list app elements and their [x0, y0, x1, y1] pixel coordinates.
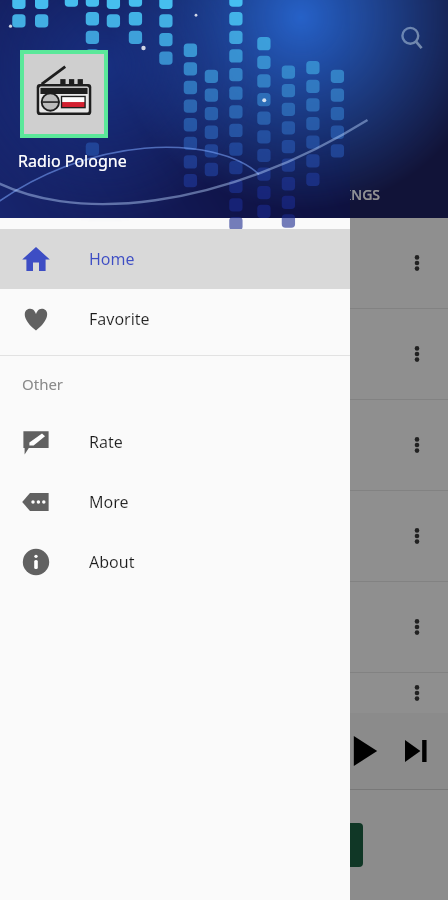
button[interactable]: STATIONS — [0, 170, 224, 218]
button[interactable]: Rate — [0, 412, 350, 472]
staticText: Radio Pologne — [18, 150, 127, 172]
button[interactable]: More options — [394, 240, 440, 286]
button[interactable]: More options — [0, 491, 448, 581]
staticText: More — [89, 491, 129, 513]
button[interactable]: More options — [0, 582, 448, 672]
button[interactable]: More — [0, 472, 350, 532]
staticText: Home — [89, 248, 135, 270]
button[interactable]: More options — [394, 673, 440, 713]
staticText: RECORDINGS — [291, 185, 381, 204]
button[interactable]: More options — [394, 604, 440, 650]
button[interactable]: More options — [0, 673, 448, 713]
button[interactable]: More options — [394, 422, 440, 468]
button[interactable]: About — [0, 532, 350, 592]
button[interactable]: More options — [394, 331, 440, 377]
button[interactable]: Favorite — [0, 289, 350, 349]
button[interactable]: More options — [0, 218, 448, 308]
button[interactable]: More options — [0, 309, 448, 399]
staticText: Favorite — [89, 308, 150, 330]
button[interactable]: RECORDINGS — [224, 170, 448, 218]
staticText: Other — [22, 374, 64, 394]
button[interactable]: Home — [0, 229, 350, 289]
staticText: About — [89, 551, 135, 573]
button[interactable]: Search — [392, 18, 432, 58]
button[interactable]: Play — [338, 725, 390, 777]
button[interactable]: Next — [390, 725, 442, 777]
staticText: STATIONS — [79, 185, 145, 204]
button[interactable]: INSTALLER — [250, 823, 363, 867]
button[interactable]: More options — [394, 513, 440, 559]
button[interactable]: More options — [0, 400, 448, 490]
staticText: Rate — [89, 431, 123, 453]
